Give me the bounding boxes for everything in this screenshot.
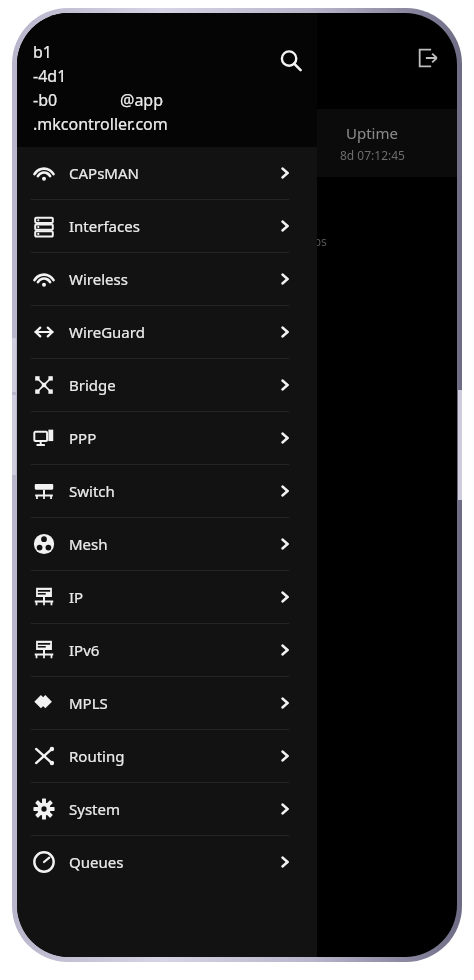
staticText: Interfaces [69, 216, 140, 236]
button[interactable]: MPLS [17, 677, 317, 729]
button[interactable]: Log out [415, 45, 441, 75]
staticText: -4d1 [33, 65, 67, 87]
button[interactable]: Switch [17, 465, 317, 517]
staticText: b1 [33, 41, 52, 63]
button[interactable]: IPv6 [17, 624, 317, 676]
button[interactable]: Wireless [17, 253, 317, 305]
staticText: Uptime [346, 123, 398, 143]
button[interactable]: Bridge [17, 359, 317, 411]
staticText: WireGuard [69, 322, 145, 342]
staticText: System [69, 799, 120, 819]
button[interactable]: Queues [17, 836, 317, 888]
staticText: Bridge [69, 375, 116, 395]
button[interactable]: Mesh [17, 518, 317, 570]
button[interactable]: Routing [17, 730, 317, 782]
staticText: Mesh [69, 534, 108, 554]
staticText: Routing [69, 746, 125, 766]
staticText: .mkcontroller.com [33, 113, 168, 135]
staticText: @app [120, 89, 164, 111]
button[interactable]: BACK [33, 45, 111, 75]
button[interactable]: PPP [17, 412, 317, 464]
button[interactable]: WireGuard [17, 306, 317, 358]
button[interactable]: CAPsMAN [17, 147, 317, 199]
staticText: Switch [69, 481, 115, 501]
staticText: -b0 [33, 89, 58, 111]
button[interactable]: IP [17, 571, 317, 623]
staticText: e steps [287, 233, 327, 249]
staticText: Wireless [69, 269, 128, 289]
staticText: 8d 07:12:45 [340, 147, 405, 163]
staticText: MPLS [69, 693, 108, 713]
staticText: CAPsMAN [69, 163, 139, 183]
button[interactable]: Search [279, 41, 303, 73]
staticText: IP [69, 587, 84, 607]
staticText: Queues [69, 852, 124, 872]
staticText: IPv6 [69, 640, 100, 660]
button[interactable]: System [17, 783, 317, 835]
staticText: PPP [69, 428, 97, 448]
button[interactable]: Interfaces [17, 200, 317, 252]
